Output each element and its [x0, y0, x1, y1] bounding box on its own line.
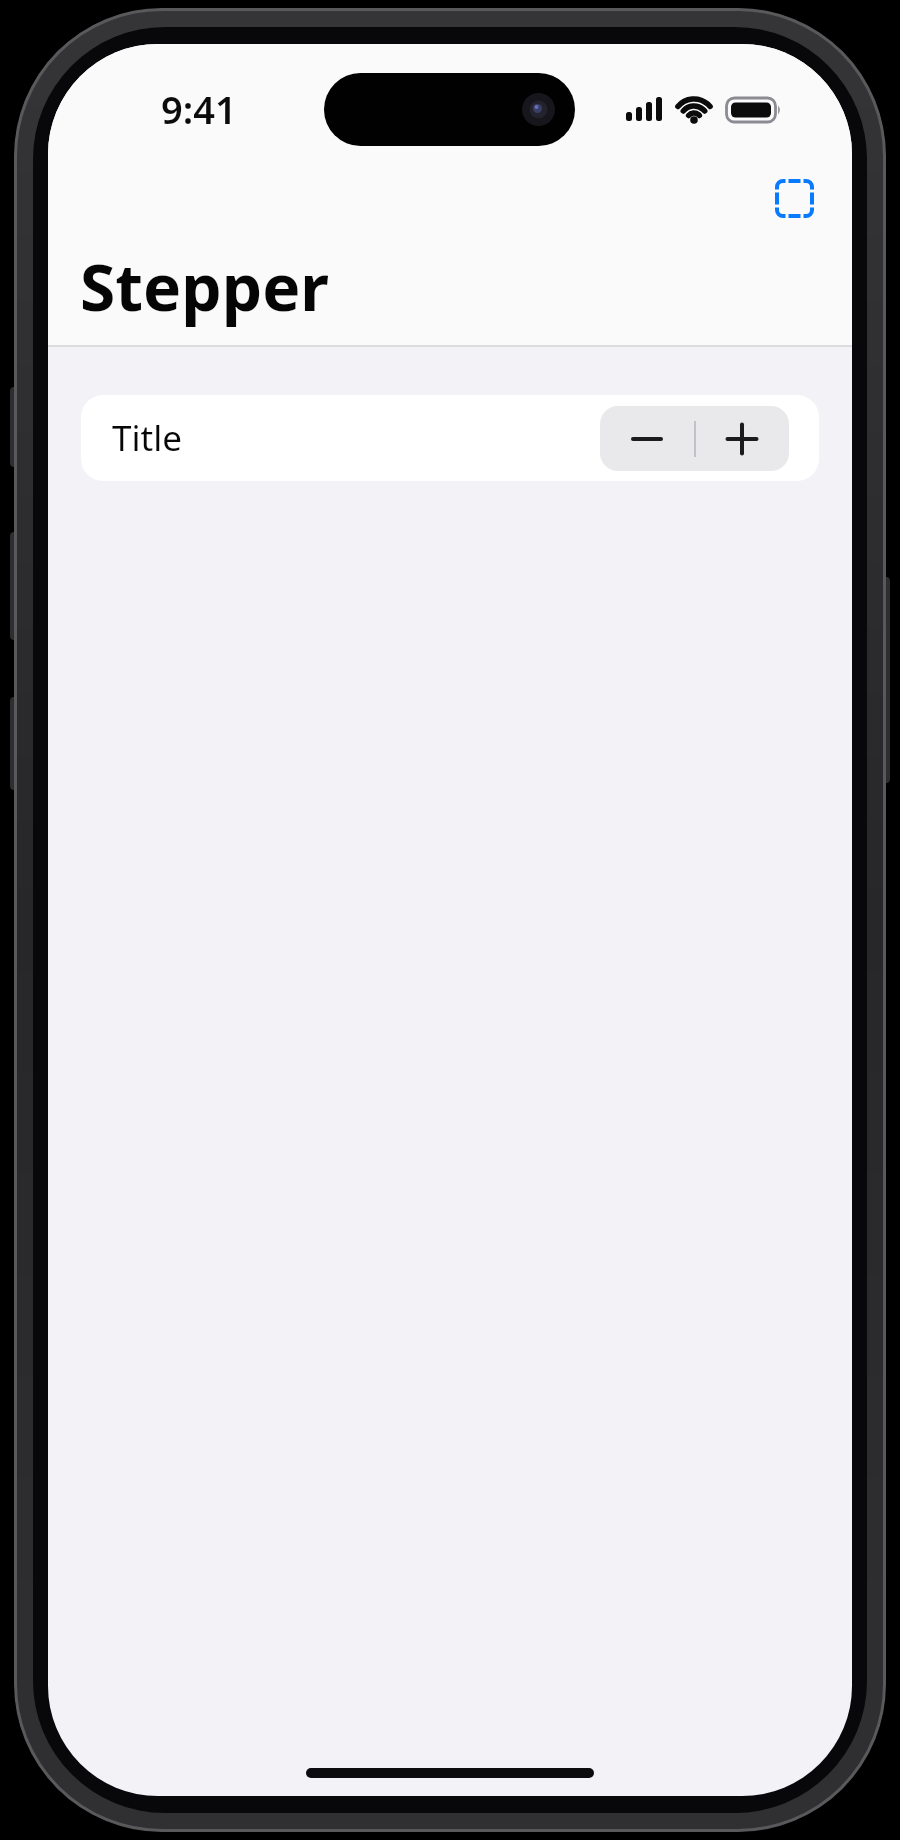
button[interactable] [767, 171, 822, 226]
button[interactable] [600, 406, 694, 471]
staticText: 9:41 [161, 83, 237, 125]
staticText: Title [112, 414, 182, 462]
staticText: Stepper [80, 243, 329, 330]
button[interactable] [695, 406, 789, 471]
